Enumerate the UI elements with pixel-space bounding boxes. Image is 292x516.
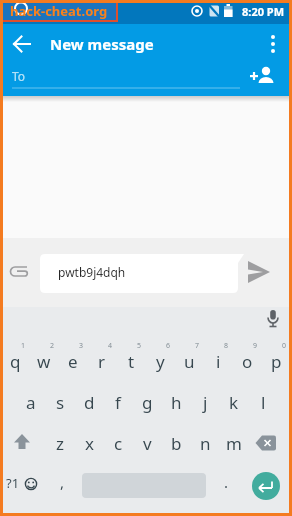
button[interactable] — [262, 308, 284, 330]
button[interactable]: , — [52, 469, 72, 495]
staticText: c — [114, 432, 123, 455]
button[interactable] — [253, 432, 283, 456]
staticText: t — [128, 350, 135, 373]
button[interactable]: w — [30, 346, 58, 376]
staticText: g — [142, 391, 153, 414]
staticText: a — [26, 391, 36, 414]
staticText: 5 — [137, 341, 142, 351]
button[interactable]: c — [104, 428, 132, 458]
staticText: 8:20 PM — [242, 4, 285, 19]
staticText: 8 — [224, 341, 229, 351]
staticText: v — [143, 432, 152, 455]
button[interactable]: t — [117, 346, 145, 376]
button[interactable]: a — [17, 387, 45, 417]
staticText: q — [10, 350, 21, 373]
button[interactable] — [8, 260, 32, 282]
button[interactable]: i — [204, 346, 232, 376]
staticText: 0 — [282, 341, 287, 351]
button[interactable]: s — [46, 387, 74, 417]
button[interactable]: o — [233, 346, 261, 376]
staticText: w — [37, 350, 51, 373]
button[interactable]: u — [175, 346, 203, 376]
button[interactable]: l — [249, 387, 277, 417]
staticText: z — [56, 432, 64, 455]
button[interactable]: p — [262, 346, 290, 376]
button[interactable]: pwtb9j4dqh — [58, 260, 228, 284]
staticText: l — [261, 391, 266, 414]
button[interactable]: h — [162, 387, 190, 417]
staticText: . — [224, 472, 229, 492]
staticText: m — [226, 432, 242, 455]
button[interactable]: v — [133, 428, 161, 458]
button[interactable] — [0, 24, 292, 64]
staticText: h — [171, 391, 182, 414]
button[interactable]: j — [191, 387, 219, 417]
button[interactable]: f — [104, 387, 132, 417]
button[interactable] — [246, 260, 274, 286]
staticText: y — [156, 350, 165, 373]
staticText: e — [68, 350, 78, 373]
button[interactable]: e — [59, 346, 87, 376]
button[interactable]: y — [146, 346, 174, 376]
button[interactable]: k — [220, 387, 248, 417]
staticText: ?1 — [6, 474, 20, 492]
button[interactable]: ?1 — [1, 470, 25, 496]
button[interactable]: m — [220, 428, 248, 458]
staticText: n — [200, 432, 211, 455]
button[interactable]: d — [75, 387, 103, 417]
button[interactable]: n — [191, 428, 219, 458]
button[interactable]: g — [133, 387, 161, 417]
button[interactable] — [248, 62, 282, 92]
staticText: 6 — [166, 341, 171, 351]
staticText: f — [115, 391, 121, 414]
staticText: r — [98, 350, 106, 373]
button[interactable]: r — [88, 346, 116, 376]
staticText: i — [216, 350, 221, 373]
button[interactable]: x — [75, 428, 103, 458]
staticText: 7 — [195, 341, 200, 351]
staticText: To — [12, 68, 26, 84]
staticText: 3 — [79, 341, 84, 351]
staticText: b — [171, 432, 182, 455]
staticText: pwtb9j4dqh — [58, 264, 126, 280]
staticText: 2 — [50, 341, 55, 351]
button[interactable]: b — [162, 428, 190, 458]
staticText: p — [271, 350, 282, 373]
button[interactable] — [8, 430, 36, 456]
button[interactable] — [23, 476, 39, 492]
button[interactable]: z — [46, 428, 74, 458]
staticText: 1 — [21, 341, 26, 351]
staticText: x — [85, 432, 94, 455]
staticText: o — [242, 350, 253, 373]
staticText: u — [184, 350, 195, 373]
staticText: 9 — [253, 341, 258, 351]
staticText: k — [229, 391, 239, 414]
button[interactable]: q — [1, 346, 29, 376]
staticText: hack-cheat.org — [10, 2, 108, 20]
staticText: j — [203, 391, 208, 414]
staticText: New message — [50, 34, 154, 54]
staticText: , — [60, 472, 65, 492]
staticText: d — [84, 391, 95, 414]
staticText: 4 — [108, 341, 113, 351]
button[interactable]: To — [12, 62, 248, 90]
button[interactable]: . — [216, 469, 236, 495]
staticText: s — [56, 391, 65, 414]
button[interactable] — [252, 472, 280, 500]
